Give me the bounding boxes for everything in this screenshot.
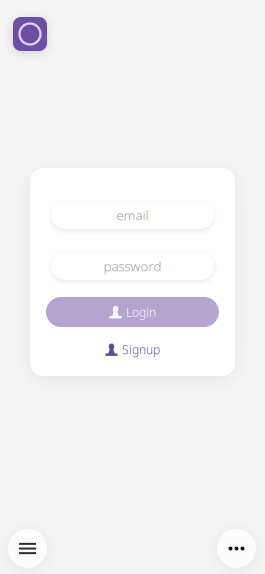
button[interactable]: Menu	[8, 529, 47, 568]
staticText: Signup	[122, 341, 160, 357]
button[interactable]: password	[51, 252, 214, 280]
button[interactable]: Signup	[105, 339, 160, 360]
button[interactable]: Login	[46, 297, 219, 327]
staticText: Login	[126, 304, 156, 320]
staticText: password	[103, 257, 161, 275]
staticText: email	[116, 206, 148, 224]
button[interactable]: More options	[217, 529, 256, 568]
button[interactable]: email	[51, 201, 214, 229]
